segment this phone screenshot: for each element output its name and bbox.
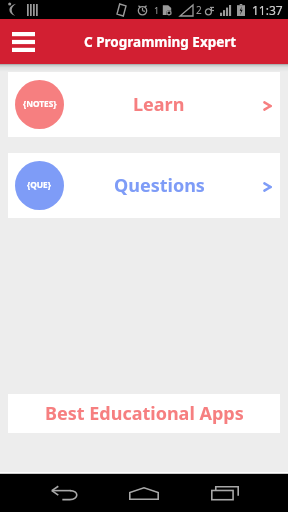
staticText: {NOTES} — [23, 98, 57, 109]
staticText: 11:37 — [252, 2, 283, 18]
button[interactable]: Best Educational Apps — [8, 394, 280, 433]
button[interactable]: Open navigation drawer — [6, 25, 40, 59]
staticText: Learn — [133, 92, 185, 117]
staticText: 1 — [154, 4, 160, 16]
staticText: C Programming Expert — [84, 33, 237, 51]
staticText: 2 — [196, 3, 202, 17]
staticText: Questions — [114, 173, 205, 198]
button[interactable]: {QUE} — [8, 153, 280, 218]
staticText: {QUE} — [27, 179, 52, 190]
button[interactable]: {NOTES} — [8, 72, 280, 137]
button[interactable]: Home — [124, 474, 164, 512]
button[interactable]: Recent apps — [205, 474, 245, 512]
staticText: Best Educational Apps — [45, 401, 244, 426]
button[interactable]: Back — [44, 474, 84, 512]
